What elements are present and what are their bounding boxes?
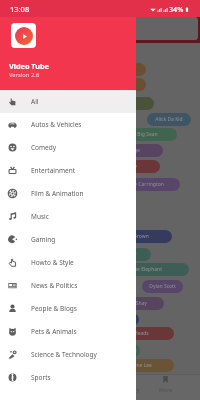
staticText: Video Tube [9,61,49,71]
button[interactable]: Big Sean [118,128,177,141]
button[interactable]: Akon [96,78,146,91]
staticText: Dirty Heads [121,330,149,337]
staticText: Comedy [31,143,57,152]
button[interactable]: Pets & Animals [0,320,136,343]
button[interactable] [2,17,198,40]
button[interactable]: Library [112,374,149,394]
button[interactable]: Gaming [0,228,136,251]
staticText: Film & Animation [31,189,84,198]
button[interactable]: More [149,374,182,394]
button[interactable]: Trending [38,374,75,394]
staticText: Science & Technology [31,350,97,359]
staticText: 13:08 [10,4,30,14]
button[interactable]: Science & Technology [0,343,136,366]
staticText: Eve [128,347,137,354]
staticText: Autos & Vehicles [31,120,82,129]
button[interactable]: Comedy [0,136,136,159]
button[interactable]: Cher [110,248,151,261]
button[interactable]: Jason Aldean [84,97,154,110]
staticText: Cage the Elephant [119,266,162,273]
staticText: Dee Shay [125,300,147,307]
staticText: Dylan Scott [149,283,176,290]
button[interactable]: Sports [0,366,136,389]
staticText: Pets & Animals [31,327,77,336]
staticText: Music [31,212,49,221]
button[interactable]: Chris Brown [96,230,172,243]
other: More [162,376,169,383]
staticText: Binkley [120,163,137,170]
staticText: All [31,97,39,106]
staticText: Bobby Carrington [122,181,164,188]
button[interactable]: Dylan Scott [142,280,183,293]
button[interactable]: Adam Levine [86,63,146,76]
staticText: Library [122,386,140,393]
button[interactable]: Binkley [96,160,160,173]
button[interactable]: Autos & Vehicles [0,113,136,136]
staticText: Alick Da Kid [155,116,183,123]
button[interactable]: Bridge [100,144,163,157]
staticText: Chris Brown [120,233,149,240]
staticText: Entertainment [31,166,76,175]
staticText: Em Drone Lee [119,362,152,369]
button[interactable]: Howto & Style [0,251,136,274]
staticText: News & Politics [31,281,78,290]
staticText: More [159,386,173,393]
button[interactable]: Cage the Elephant [92,263,189,276]
button[interactable]: Home [0,374,38,394]
staticText: Gaming [31,235,56,244]
staticText: People & Blogs [31,304,77,313]
staticText: Sports [31,373,51,382]
button[interactable]: Entertainment [0,159,136,182]
button[interactable]: Dirty Heads [96,327,174,340]
button[interactable]: Alick Da Kid [147,113,191,126]
button[interactable]: Eve [124,344,140,357]
staticText: 34% [169,4,184,14]
button[interactable]: Dee Shay [108,297,164,310]
other: Home [16,376,23,383]
staticText: Howto & Style [31,258,74,267]
button[interactable]: Em Drone Lee [96,359,174,372]
staticText: Cher [125,251,137,258]
button[interactable]: News & Politics [0,274,136,297]
button[interactable]: Bobby Carrington [106,178,180,191]
staticText: Big Sean [137,131,158,138]
button[interactable]: App icon [11,23,36,48]
staticText: Version 2.8 [9,71,40,79]
button[interactable]: People & Blogs [0,297,136,320]
staticText: Bridge [124,147,140,154]
button[interactable]: Dan [120,313,139,326]
button[interactable]: Music [0,205,136,228]
button[interactable]: All [0,90,136,113]
button[interactable]: Film & Animation [0,182,136,205]
